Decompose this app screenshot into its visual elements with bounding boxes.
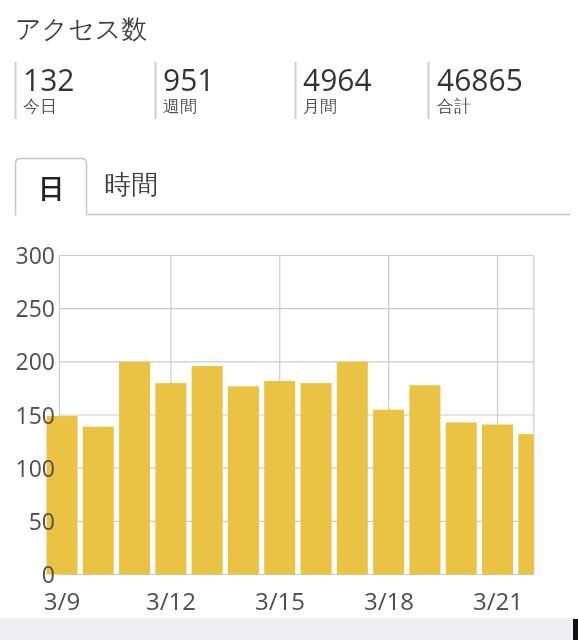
button[interactable]: 132 xyxy=(23,59,75,100)
staticText: 250 xyxy=(0,292,55,323)
staticText: 月間 xyxy=(303,96,337,117)
staticText: 0 xyxy=(0,558,55,589)
staticText: 週間 xyxy=(163,96,197,117)
staticText: 150 xyxy=(0,399,55,430)
staticText: 3/18 xyxy=(344,584,434,617)
staticText: 132 xyxy=(23,59,75,100)
button[interactable]: 日 xyxy=(15,158,87,215)
staticText: アクセス数 xyxy=(15,13,148,46)
button[interactable]: 4964 xyxy=(303,59,372,100)
button[interactable]: 時間 xyxy=(95,158,175,215)
staticText: 3/15 xyxy=(235,584,325,617)
button[interactable]: 951 xyxy=(163,59,215,100)
staticText: 今日 xyxy=(23,96,57,117)
staticText: 日 xyxy=(38,173,64,206)
staticText: 100 xyxy=(0,452,55,483)
staticText: 951 xyxy=(163,59,215,100)
staticText: 300 xyxy=(0,239,55,270)
staticText: 200 xyxy=(0,345,55,376)
staticText: 3/9 xyxy=(17,584,107,617)
staticText: 50 xyxy=(0,505,55,536)
staticText: 46865 xyxy=(437,59,523,100)
staticText: 4964 xyxy=(303,59,372,100)
button[interactable]: 46865 xyxy=(437,59,523,100)
staticText: 時間 xyxy=(104,168,158,202)
staticText: 合計 xyxy=(437,96,471,117)
staticText: 3/12 xyxy=(126,584,216,617)
staticText: 3/21 xyxy=(453,584,543,617)
